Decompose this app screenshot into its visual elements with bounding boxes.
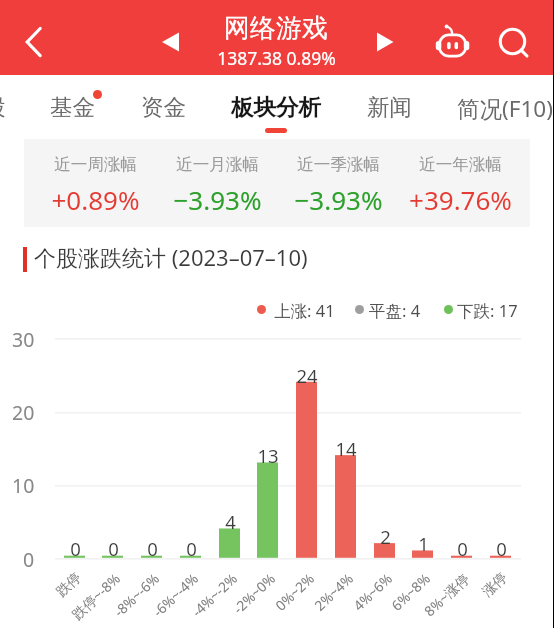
staticText: 上涨: 41	[274, 299, 335, 322]
staticText: 1387.38 0.89%	[217, 46, 336, 70]
staticText: 24	[296, 363, 318, 388]
staticText: 资金	[141, 93, 186, 121]
staticText: 股	[0, 93, 6, 121]
staticText: 8%~涨停	[420, 569, 473, 620]
staticText: +0.89%	[51, 182, 140, 217]
staticText: −3.93%	[173, 182, 262, 217]
staticText: 近一月涨幅	[176, 154, 259, 175]
staticText: -6%~-4%	[148, 569, 202, 621]
staticText: 30	[12, 326, 35, 353]
staticText: 平盘: 4	[369, 299, 421, 322]
staticText: 20	[12, 399, 35, 426]
button[interactable]: Previous sector	[152, 22, 190, 62]
button[interactable]: 资金	[126, 75, 200, 137]
staticText: -2%~0%	[228, 569, 279, 618]
staticText: +39.76%	[409, 182, 512, 217]
staticText: 4%~6%	[349, 569, 396, 615]
staticText: 2%~4%	[310, 569, 357, 615]
button[interactable]: AI assistant	[426, 17, 478, 67]
staticText: 0	[108, 536, 119, 561]
staticText: 简况(F10)	[457, 93, 553, 124]
staticText: 跌停	[52, 569, 85, 600]
staticText: 0	[23, 546, 35, 573]
staticText: 14	[335, 436, 357, 461]
button[interactable]: 新闻	[352, 75, 426, 137]
button[interactable]: 股	[0, 75, 14, 137]
staticText: 13	[257, 443, 279, 468]
staticText: -8%~-6%	[109, 569, 163, 621]
staticText: 涨停	[478, 569, 511, 600]
staticText: 4	[225, 509, 236, 534]
staticText: 近一季涨幅	[297, 154, 380, 175]
staticText: 近一周涨幅	[54, 154, 137, 175]
staticText: 1	[418, 531, 429, 556]
staticText: 6%~8%	[387, 569, 434, 615]
staticText: 0	[147, 536, 158, 561]
staticText: 0	[496, 536, 507, 561]
button[interactable]: 基金	[35, 75, 109, 137]
button[interactable]: Search	[488, 17, 540, 67]
staticText: 跌停~-8%	[67, 569, 124, 624]
staticText: 0	[186, 536, 197, 561]
staticText: 近一年涨幅	[419, 154, 502, 175]
staticText: -4%~-2%	[187, 569, 241, 621]
staticText: 0	[70, 536, 81, 561]
staticText: 0	[457, 536, 468, 561]
button[interactable]: 板块分析	[217, 75, 335, 137]
staticText: 新闻	[367, 93, 412, 121]
button[interactable]: Back	[8, 17, 60, 67]
staticText: 0%~2%	[271, 569, 318, 615]
staticText: 个股涨跌统计 (2023–07–10)	[34, 242, 308, 272]
staticText: 下跌: 17	[457, 299, 518, 322]
staticText: 板块分析	[231, 93, 321, 121]
staticText: 10	[12, 472, 35, 499]
button[interactable]: Next sector	[367, 22, 405, 62]
button[interactable]: 简况(F10)	[449, 75, 554, 137]
staticText: 2	[380, 524, 391, 549]
staticText: 网络游戏	[224, 12, 328, 45]
staticText: 基金	[50, 93, 95, 121]
staticText: −3.93%	[294, 182, 383, 217]
